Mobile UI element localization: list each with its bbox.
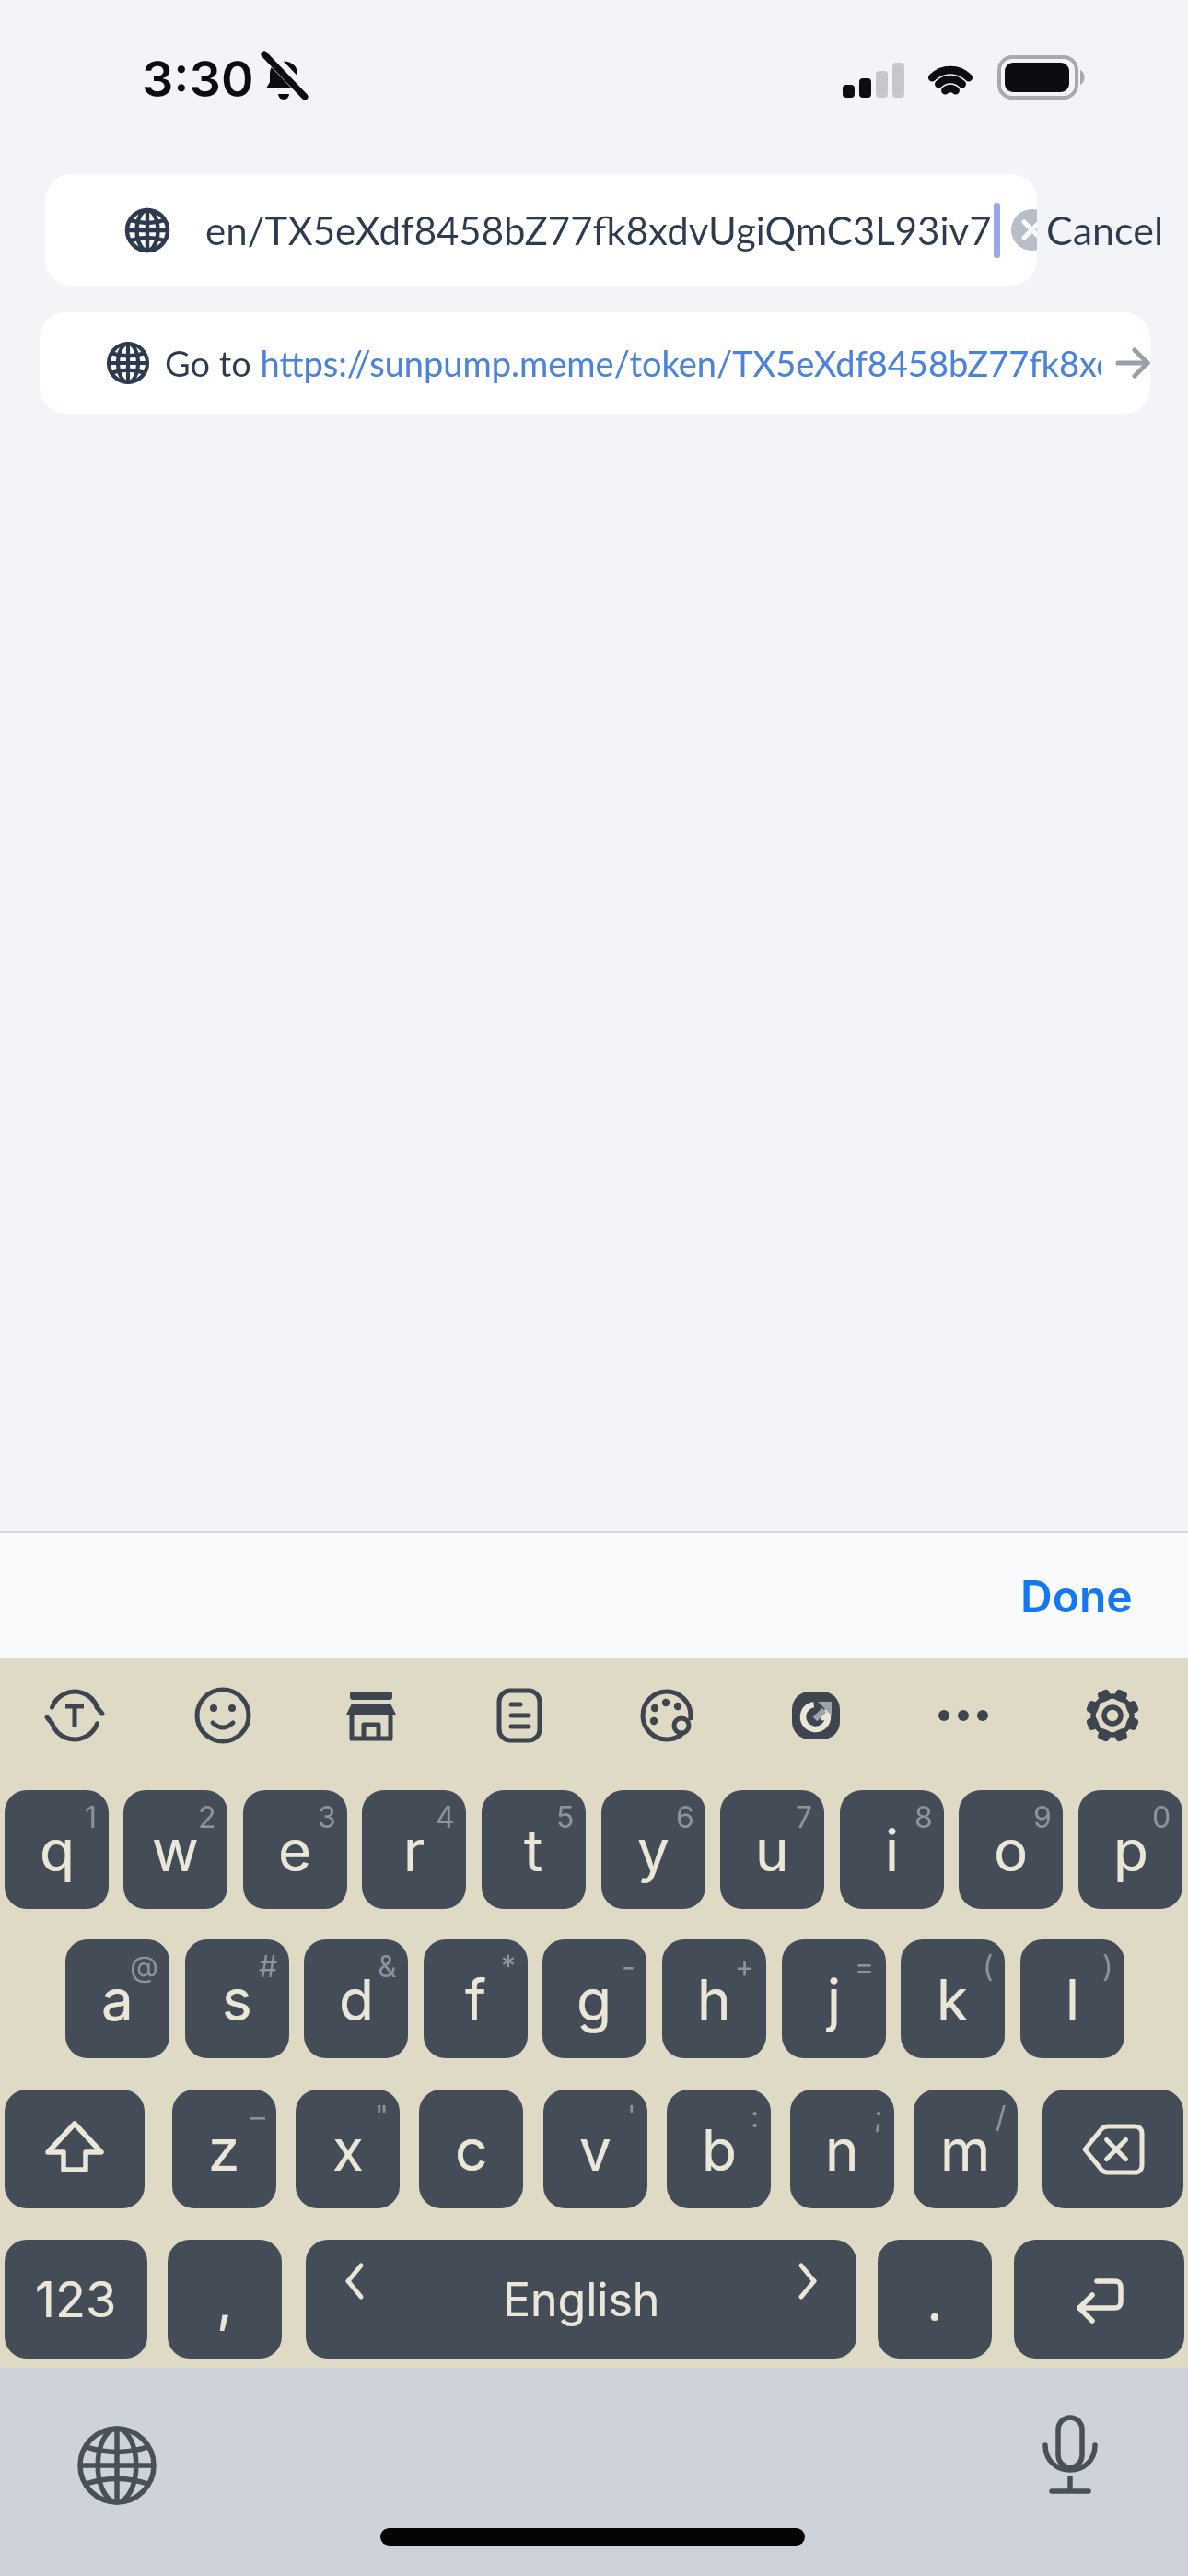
staticText: h [697,1965,731,2034]
button[interactable]: w [123,1790,227,1909]
staticText: l [1066,1965,1080,2034]
staticText: u [755,1816,789,1885]
button[interactable]: en/TX5eXdf8458bZ77fk8xdvUgiQmC3L93iv7 [45,174,1037,286]
staticText: 7 [796,1799,813,1835]
staticText: Cancel [1046,206,1164,254]
staticText: n [825,2115,859,2184]
button[interactable]: Cancel [1042,174,1168,286]
staticText: r [403,1816,425,1885]
button[interactable] [785,1684,847,1747]
staticText: ; [874,2099,883,2135]
button[interactable]: g [542,1939,646,2058]
button[interactable] [1033,2412,1107,2500]
staticText: = [855,1949,875,1985]
button[interactable] [1042,2090,1183,2208]
staticText: p [1113,1816,1148,1885]
button[interactable]: b [667,2090,771,2208]
button[interactable]: s [185,1939,289,2058]
button[interactable]: v [543,2090,647,2208]
staticText: 4 [436,1799,455,1835]
button[interactable] [340,1684,402,1747]
button[interactable]: r [362,1790,466,1909]
button[interactable]: 123 [5,2240,147,2359]
staticText: k [937,1965,969,2034]
button[interactable]: l [1020,1939,1124,2058]
staticText: – [250,2099,265,2135]
staticText: w [152,1816,199,1885]
button[interactable]: p [1078,1790,1182,1909]
staticText: : [751,2099,760,2135]
button[interactable]: . [878,2240,992,2359]
button[interactable]: y [601,1790,705,1909]
button[interactable] [635,1684,698,1747]
staticText: d [339,1965,374,2034]
button[interactable]: u [720,1790,824,1909]
staticText: @ [130,1949,158,1985]
staticText: Done [1020,1569,1133,1622]
staticText: en/TX5eXdf8458bZ77fk8xdvUgiQmC3L93iv7 [205,207,992,253]
staticText: Go to https://sunpump.meme/token/TX5eXdf… [165,342,1101,384]
button[interactable] [1081,1684,1144,1747]
button[interactable] [932,1684,995,1747]
staticText: 2 [198,1799,216,1835]
button[interactable]: z [172,2090,276,2208]
button[interactable]: x [296,2090,400,2208]
staticText: * [501,1949,517,1985]
staticText: 123 [35,2269,117,2329]
staticText: 0 [1152,1799,1171,1835]
staticText: t [524,1816,543,1885]
button[interactable]: j [782,1939,886,2058]
staticText: 3 [318,1799,336,1835]
staticText: ' [627,2099,636,2135]
button[interactable] [5,2090,145,2208]
staticText: e [278,1816,312,1885]
staticText: b [702,2115,737,2184]
button[interactable] [192,1684,254,1747]
staticText: 9 [1033,1799,1052,1835]
button[interactable]: t [482,1790,586,1909]
staticText: 8 [914,1799,933,1835]
staticText: x [332,2115,364,2184]
button[interactable] [71,2419,163,2512]
button[interactable]: h [662,1939,766,2058]
button[interactable]: a [65,1939,169,2058]
button[interactable] [1014,2240,1184,2359]
staticText: . [926,2266,943,2335]
staticText: / [996,2099,1007,2135]
button[interactable] [1011,209,1037,251]
staticText: + [735,1949,755,1985]
button[interactable]: o [959,1790,1063,1909]
button[interactable] [488,1684,551,1747]
staticText: m [940,2115,991,2184]
staticText: z [208,2115,240,2184]
staticText: ) [1102,1949,1113,1985]
button[interactable]: f [424,1939,528,2058]
staticText: 6 [676,1799,694,1835]
staticText: English [503,2272,660,2327]
staticText: q [40,1816,75,1885]
staticText: s [222,1965,252,2034]
button[interactable]: i [840,1790,944,1909]
staticText: g [577,1965,612,2034]
button[interactable]: , [168,2240,282,2359]
staticText: c [455,2115,488,2184]
staticText: 5 [556,1799,575,1835]
button[interactable]: c [419,2090,523,2208]
button[interactable]: e [243,1790,347,1909]
button[interactable]: k [901,1939,1005,2058]
button[interactable]: m [914,2090,1018,2208]
button[interactable]: Done [1009,1558,1144,1633]
staticText: y [637,1816,670,1885]
staticText: j [827,1965,842,2034]
staticText: i [885,1816,900,1885]
button[interactable]: q [5,1790,109,1909]
button[interactable] [43,1684,106,1747]
staticText: & [378,1949,397,1985]
button[interactable]: d [304,1939,408,2058]
staticText: f [465,1965,486,2034]
button[interactable]: English [306,2240,856,2359]
button[interactable]: Go to https://sunpump.meme/token/TX5eXdf… [40,312,1150,414]
staticText: o [994,1816,1029,1885]
button[interactable]: n [790,2090,894,2208]
staticText: 3:30 [142,49,254,109]
